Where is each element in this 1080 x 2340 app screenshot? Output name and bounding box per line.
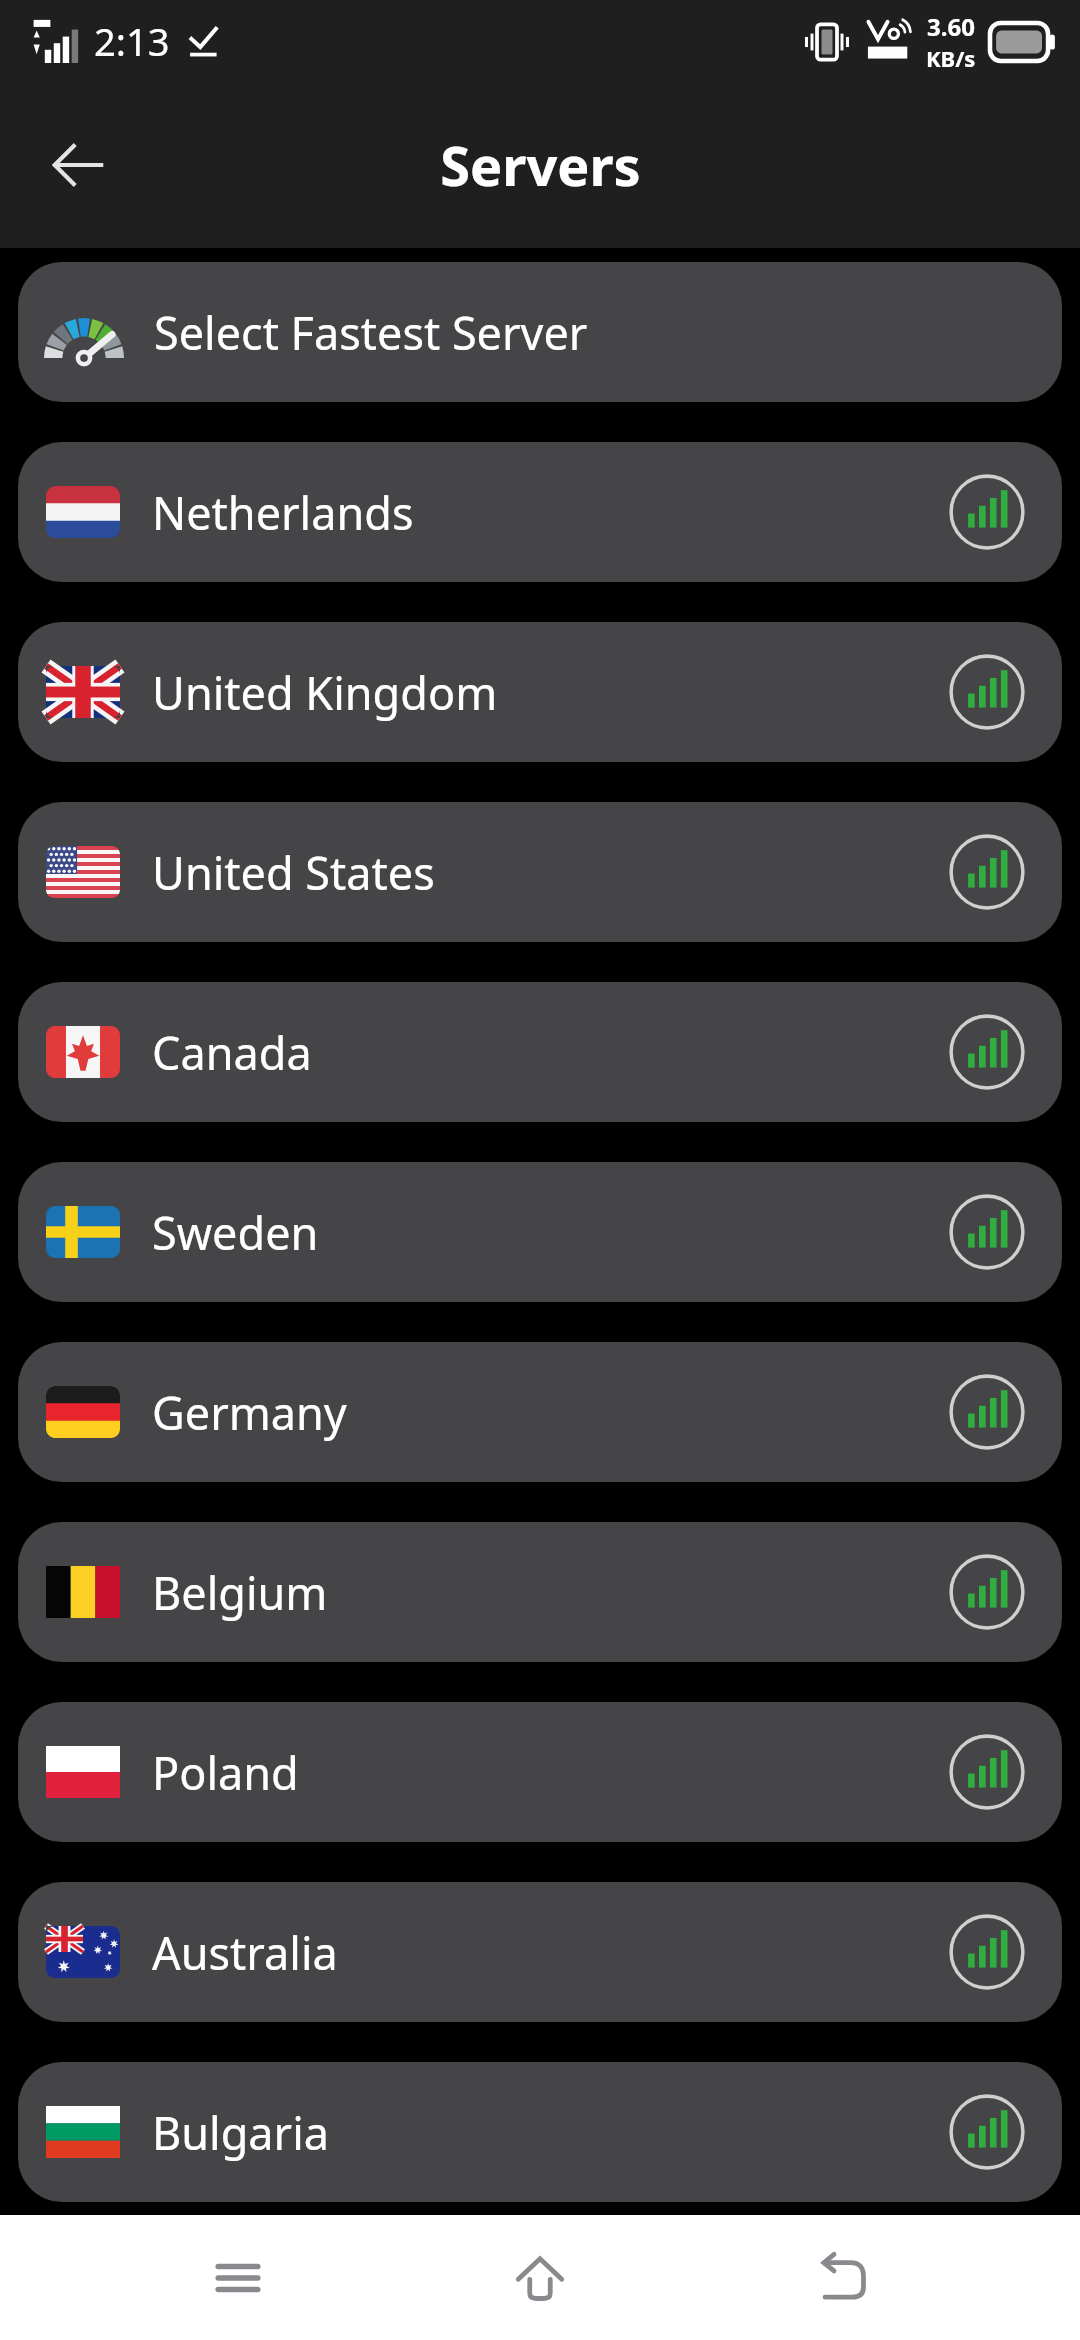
button[interactable]: Back (778, 2215, 908, 2340)
staticText: Servers (440, 128, 641, 202)
button[interactable]: Poland (18, 1702, 1062, 1842)
button[interactable]: Signal strength for Germany (946, 1371, 1028, 1453)
button[interactable]: Signal strength for United Kingdom (946, 651, 1028, 733)
staticText: KB/s (926, 43, 976, 73)
button[interactable]: Select Fastest Server (18, 262, 1062, 402)
staticText: Bulgaria (152, 2102, 946, 2163)
button[interactable]: United States (18, 802, 1062, 942)
button[interactable]: Germany (18, 1342, 1062, 1482)
staticText: Canada (152, 1022, 946, 1083)
staticText: Select Fastest Server (154, 302, 588, 363)
staticText: Germany (152, 1382, 946, 1443)
button[interactable]: Recent apps (173, 2215, 303, 2340)
button[interactable]: Netherlands (18, 442, 1062, 582)
staticText: 2:13 (94, 15, 170, 67)
button[interactable]: Signal strength for Poland (946, 1731, 1028, 1813)
button[interactable]: Signal strength for Belgium (946, 1551, 1028, 1633)
button[interactable]: Sweden (18, 1162, 1062, 1302)
button[interactable]: Australia (18, 1882, 1062, 2022)
staticText: Poland (152, 1742, 946, 1803)
button[interactable]: Signal strength for Bulgaria (946, 2091, 1028, 2173)
staticText: United States (152, 842, 946, 903)
button[interactable]: Home (475, 2215, 605, 2340)
staticText: Australia (152, 1922, 946, 1983)
button[interactable]: Signal strength for United States (946, 831, 1028, 913)
button[interactable]: Bulgaria (18, 2062, 1062, 2202)
button[interactable]: Signal strength for Australia (946, 1911, 1028, 1993)
button[interactable]: Canada (18, 982, 1062, 1122)
staticText: 3.60 (927, 10, 975, 43)
staticText: Belgium (152, 1562, 946, 1623)
button[interactable]: Belgium (18, 1522, 1062, 1662)
button[interactable]: Signal strength for Sweden (946, 1191, 1028, 1273)
button[interactable]: Signal strength for Netherlands (946, 471, 1028, 553)
button[interactable]: United Kingdom (18, 622, 1062, 762)
staticText: United Kingdom (152, 662, 946, 723)
button[interactable]: Signal strength for Canada (946, 1011, 1028, 1093)
staticText: Sweden (152, 1202, 946, 1263)
staticText: Netherlands (152, 482, 946, 543)
button[interactable]: Back (34, 123, 118, 207)
